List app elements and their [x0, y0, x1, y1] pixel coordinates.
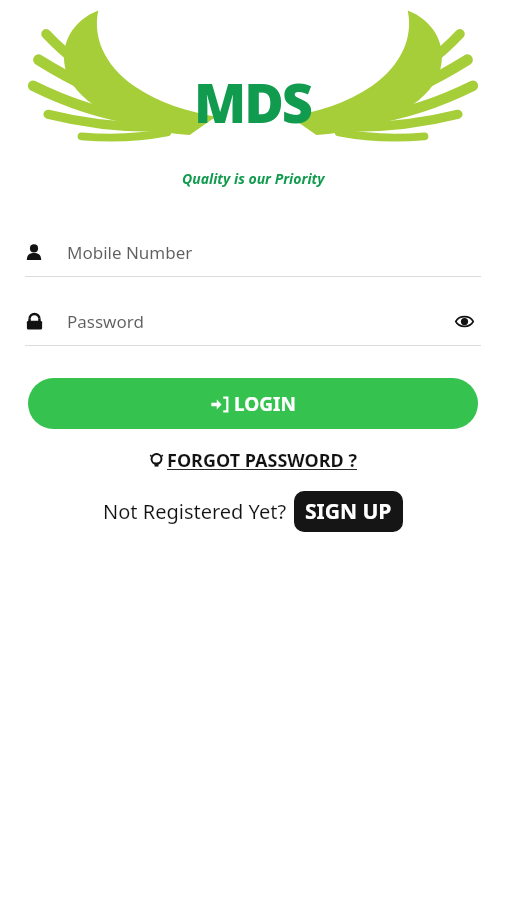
- button[interactable]: Password: [25, 297, 481, 346]
- button[interactable]: LOGIN: [28, 378, 478, 429]
- button[interactable]: Not Registered Yet?: [103, 498, 287, 525]
- button[interactable]: FORGOT PASSWORD ?: [143, 444, 364, 477]
- button[interactable]: SIGN UP: [294, 491, 403, 532]
- staticText: Password: [67, 310, 447, 333]
- staticText: MDS: [194, 65, 312, 139]
- staticText: Quality is our Priority: [182, 169, 325, 188]
- button[interactable]: Show password: [455, 312, 474, 331]
- button[interactable]: Mobile Number: [25, 228, 481, 277]
- staticText: Mobile Number: [67, 241, 481, 264]
- staticText: SIGN UP: [305, 497, 392, 526]
- staticText: LOGIN: [234, 391, 296, 417]
- staticText: FORGOT PASSWORD ?: [167, 448, 358, 473]
